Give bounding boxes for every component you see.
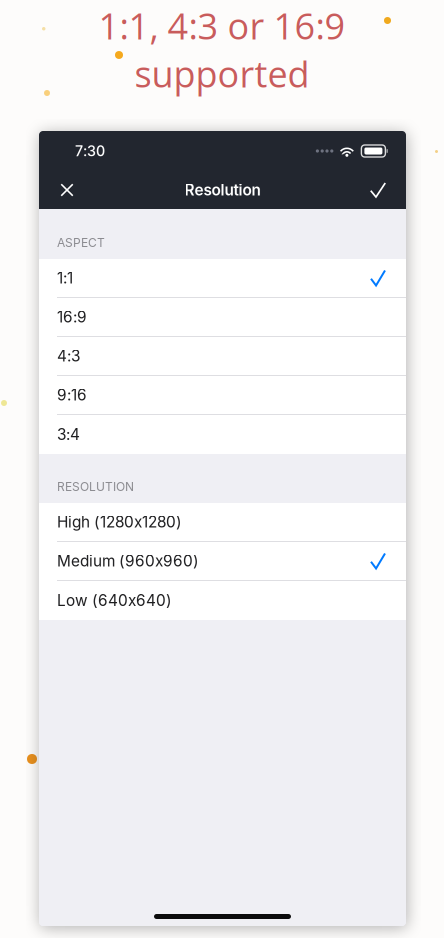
button[interactable]: 16:9 (39, 298, 406, 337)
staticText: RESOLUTION (57, 479, 134, 494)
button[interactable]: 9:16 (39, 376, 406, 415)
button[interactable]: High (1280x1280) (39, 503, 406, 542)
staticText: 1:1, 4:3 or 16:9 (98, 1, 345, 50)
button[interactable]: Close (45, 171, 89, 209)
button[interactable]: 1:1 (39, 259, 406, 298)
staticText: 9:16 (57, 386, 87, 404)
staticText: 7:30 (75, 142, 105, 160)
button[interactable]: Medium (960x960) (39, 542, 406, 581)
staticText: Low (640x640) (57, 591, 172, 610)
button[interactable]: 3:4 (39, 415, 406, 454)
staticText: Medium (960x960) (57, 552, 199, 570)
button[interactable]: 4:3 (39, 337, 406, 376)
button[interactable]: Low (640x640) (39, 581, 406, 620)
staticText: ASPECT (57, 235, 105, 250)
staticText: 4:3 (57, 347, 80, 365)
staticText: supported (134, 49, 309, 98)
staticText: 16:9 (57, 308, 87, 326)
button[interactable]: Done (356, 171, 400, 209)
staticText: Resolution (184, 181, 260, 199)
staticText: 1:1 (57, 269, 73, 287)
staticText: High (1280x1280) (57, 513, 182, 531)
staticText: 3:4 (57, 425, 80, 444)
